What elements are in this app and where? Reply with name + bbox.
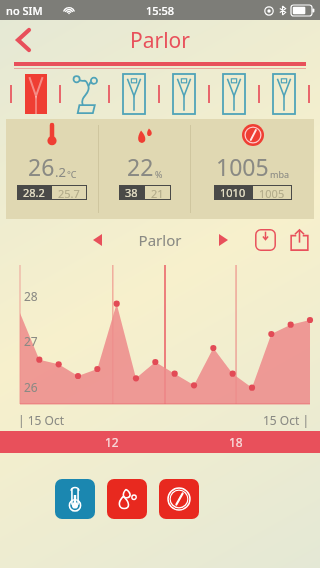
staticText: Parlor: [130, 26, 190, 55]
button[interactable]: Sensor 1: [12, 69, 59, 119]
staticText: Parlor: [112, 230, 208, 250]
staticText: 12: [105, 434, 119, 450]
staticText: 22: [127, 151, 154, 182]
staticText: 15:58: [146, 3, 175, 18]
staticText: %: [155, 168, 163, 180]
staticText: .2: [55, 163, 66, 181]
staticText: 38: [125, 185, 138, 200]
staticText: °C: [67, 168, 77, 180]
staticText: 21: [151, 186, 164, 199]
button[interactable]: Share: [286, 227, 312, 253]
staticText: 15 Oct |: [263, 412, 310, 428]
staticText: 1010: [220, 185, 246, 200]
button[interactable]: Temperature: [55, 479, 95, 519]
staticText: 28.2: [23, 185, 45, 200]
button[interactable]: Sensor 3: [110, 69, 158, 119]
staticText: mba: [270, 168, 289, 180]
staticText: | 15 Oct: [18, 412, 65, 428]
button[interactable]: Sensor 6: [260, 69, 308, 119]
staticText: 1005: [259, 186, 285, 199]
button[interactable]: Previous: [82, 225, 112, 255]
staticText: no SIM: [6, 3, 43, 18]
button[interactable]: Sensor 5: [210, 69, 258, 119]
button[interactable]: 26: [6, 119, 98, 219]
button[interactable]: Sensor 4: [160, 69, 208, 119]
button[interactable]: Sensor 2: [61, 69, 108, 119]
button[interactable]: 22: [99, 119, 190, 219]
button[interactable]: Next: [208, 225, 238, 255]
staticText: 27: [24, 333, 38, 349]
button[interactable]: 1005: [191, 119, 314, 219]
button[interactable]: Back: [0, 20, 46, 60]
button[interactable]: Humidity: [107, 479, 147, 519]
button[interactable]: Sync: [252, 227, 278, 253]
staticText: 25.7: [58, 186, 80, 199]
staticText: 28: [24, 288, 38, 304]
button[interactable]: Pressure: [159, 479, 199, 519]
staticText: 1005: [216, 151, 269, 182]
staticText: 26: [28, 151, 55, 182]
staticText: 18: [229, 434, 243, 450]
staticText: 26: [24, 379, 38, 395]
